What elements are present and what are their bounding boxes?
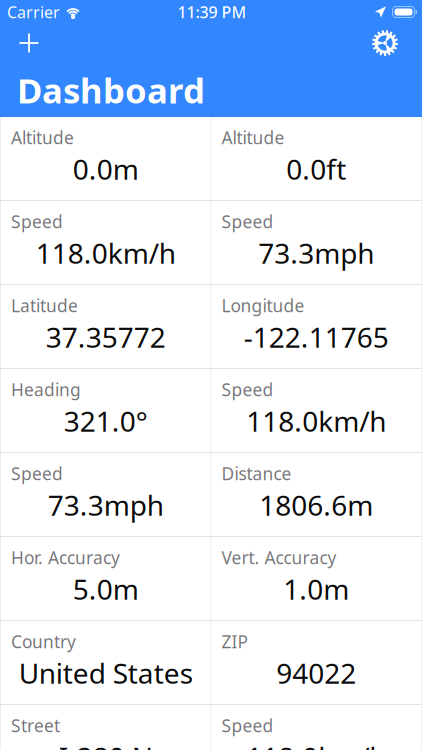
staticText: Hor. Accuracy (11, 546, 120, 569)
staticText: 321.0° (64, 402, 148, 440)
button[interactable]: Add (7, 24, 51, 62)
staticText: 73.3mph (48, 486, 164, 524)
staticText: ZIP (221, 630, 247, 653)
staticText: 1806.6m (259, 486, 373, 524)
staticText: Altitude (221, 126, 284, 149)
staticText: Heading (11, 378, 81, 401)
staticText: Altitude (11, 126, 74, 149)
staticText: Dashboard (17, 67, 205, 113)
staticText: 73.3mph (258, 234, 374, 272)
staticText: Carrier (7, 1, 60, 23)
staticText: Distance (221, 462, 291, 485)
staticText: 5.0m (73, 570, 139, 608)
button[interactable]: Settings (363, 24, 407, 62)
staticText: Street (11, 714, 60, 737)
staticText: 118.0km/h (246, 402, 386, 440)
staticText: United States (19, 654, 193, 692)
staticText: -122.11765 (244, 318, 389, 356)
staticText: Speed (221, 210, 273, 233)
staticText: Speed (221, 378, 273, 401)
staticText: Latitude (11, 294, 78, 317)
staticText: 0.0m (73, 150, 139, 188)
staticText: 118.0km/h (36, 234, 176, 272)
staticText: Country (11, 630, 76, 653)
staticText: Speed (11, 210, 63, 233)
staticText: 118.0km/h (246, 738, 386, 750)
staticText: 0.0ft (286, 150, 346, 188)
staticText: 11:39 PM (177, 1, 246, 23)
staticText: Longitude (221, 294, 304, 317)
staticText: 37.35772 (46, 318, 166, 356)
staticText: 1.0m (283, 570, 349, 608)
staticText: Vert. Accuracy (221, 546, 336, 569)
staticText: I-280 N (59, 738, 153, 750)
staticText: 94022 (276, 654, 356, 692)
staticText: Speed (11, 462, 63, 485)
staticText: Speed (221, 714, 273, 737)
